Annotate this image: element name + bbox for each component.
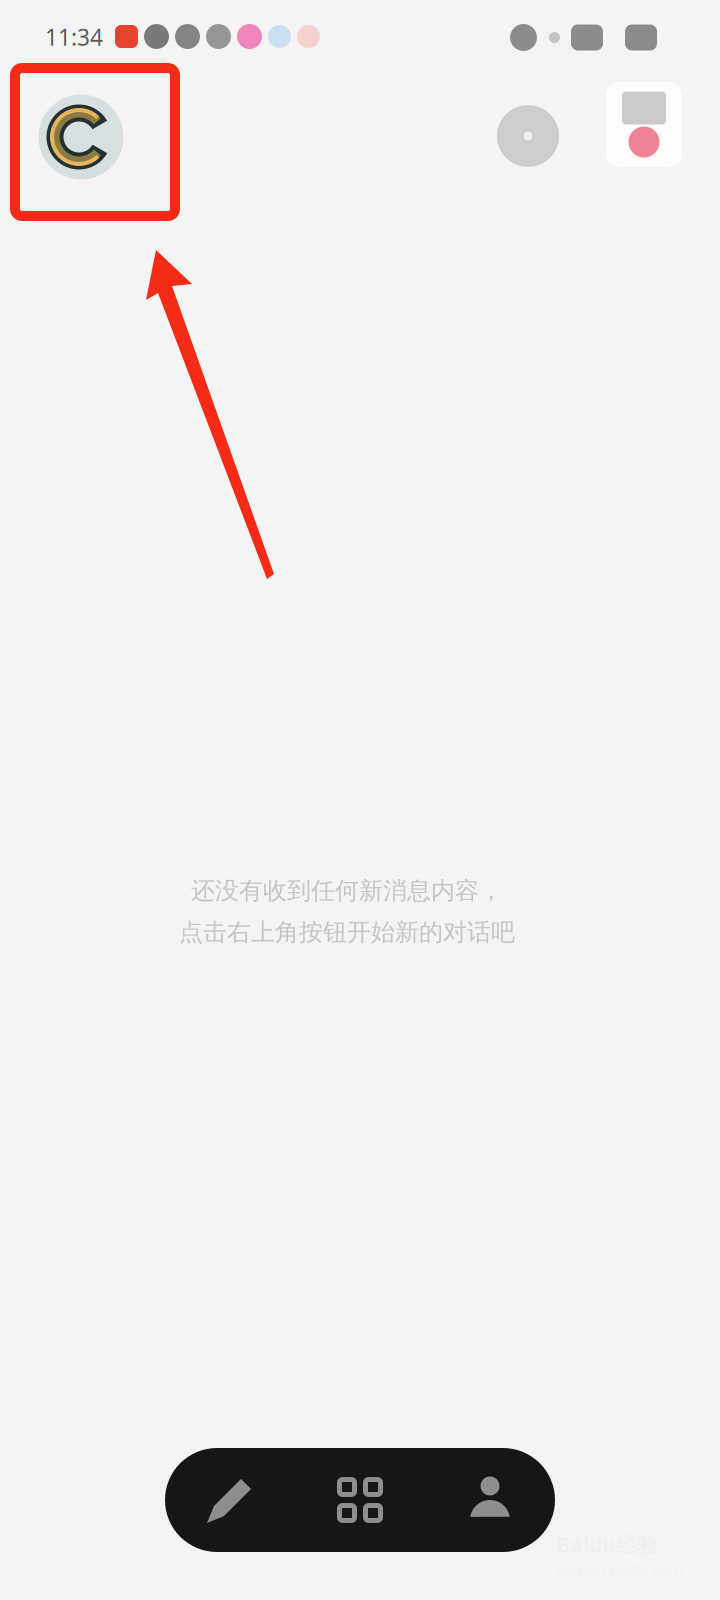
button[interactable]: More [606,82,682,167]
staticText: 还没有收到任何新消息内容， [191,876,503,905]
button[interactable]: Search [497,105,559,167]
staticText: 点击右上角按钮开始新的对话吧 [179,917,515,947]
button[interactable]: Scan [295,1448,425,1552]
button[interactable]: Profile [39,95,123,179]
staticText: 11:34 [45,22,103,52]
button[interactable]: Compose [165,1448,295,1552]
button[interactable]: Contacts [425,1448,555,1552]
